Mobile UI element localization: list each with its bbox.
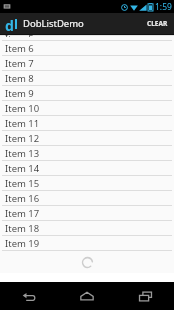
staticText: Item 5 [5,32,34,37]
staticText: Item 15 [5,177,40,190]
staticText: Item 6 [5,42,34,55]
button[interactable]: Back [0,282,58,310]
staticText: Item 8 [5,72,34,85]
button[interactable]: Item 7 [0,56,174,71]
button[interactable]: Home [58,282,116,310]
staticText: Item 13 [5,147,40,160]
staticText: Item 17 [5,207,40,220]
button[interactable]: Item 13 [0,146,174,161]
button[interactable]: Item 10 [0,101,174,116]
staticText: DobListDemo [23,17,84,30]
button[interactable]: Item 6 [0,41,174,56]
staticText: Item 16 [5,192,40,205]
staticText: Item 19 [5,237,40,250]
staticText: Item 11 [5,117,40,130]
staticText: Item 12 [5,132,40,145]
staticText: 1:59 [155,1,172,13]
staticText: d [5,16,14,32]
button[interactable]: Item 11 [0,116,174,131]
button[interactable]: Item 18 [0,221,174,236]
staticText: Item 10 [5,102,40,115]
button[interactable]: Item 15 [0,176,174,191]
staticText: Item 7 [5,57,34,70]
button[interactable]: Recent apps [116,282,174,310]
button[interactable]: Item 5 [0,36,174,41]
button[interactable]: CLEAR [141,13,174,34]
button[interactable]: App icon [3,16,19,32]
button[interactable]: Item 19 [0,236,174,251]
staticText: Item 9 [5,87,34,100]
button[interactable]: Item 16 [0,191,174,206]
button[interactable]: Item 14 [0,161,174,176]
staticText: CLEAR [147,19,168,28]
staticText: Item 18 [5,222,40,235]
button[interactable]: Item 9 [0,86,174,101]
staticText: Item 14 [5,162,40,175]
button[interactable]: Item 17 [0,206,174,221]
button[interactable]: Item 8 [0,71,174,86]
button[interactable]: Item 12 [0,131,174,146]
